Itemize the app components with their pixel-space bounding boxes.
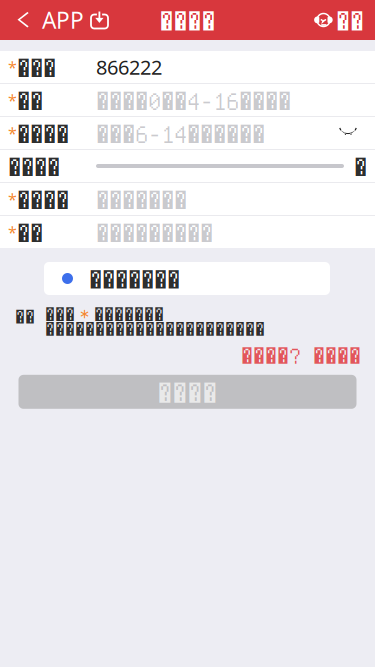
- button[interactable]: *: [0, 183, 375, 215]
- button[interactable]: *: [0, 51, 375, 83]
- staticText: *: [8, 89, 17, 111]
- staticText: *: [8, 122, 17, 144]
- button[interactable]: APP: [0, 0, 118, 40]
- staticText: ����: [157, 377, 217, 406]
- staticText: �������: [96, 186, 187, 212]
- button[interactable]: *: [0, 117, 375, 149]
- staticText: ���: [17, 54, 56, 80]
- button[interactable]: *: [0, 216, 375, 248]
- button[interactable]: Customer service: [315, 0, 375, 40]
- staticText: ���6-14������: [96, 120, 265, 146]
- staticText: *: [8, 221, 17, 243]
- staticText: ���������: [96, 219, 213, 245]
- button[interactable]: �������: [44, 262, 330, 295]
- staticText: ��: [336, 6, 364, 34]
- staticText: 866222: [96, 54, 162, 80]
- staticText: *: [8, 188, 17, 210]
- staticText: ����: [159, 6, 215, 34]
- staticText: ����? ����: [241, 343, 361, 367]
- staticText: ����: [8, 153, 60, 179]
- staticText: ∗: [75, 306, 94, 321]
- staticText: ���: [45, 306, 75, 321]
- staticText: ����0��4-16����: [96, 87, 291, 113]
- staticText: ����: [17, 120, 69, 146]
- button[interactable]: *: [0, 84, 375, 116]
- button[interactable]: ����: [18, 375, 356, 409]
- staticText: *: [8, 56, 17, 78]
- staticText: �: [354, 153, 367, 179]
- staticText: APP: [42, 5, 84, 35]
- staticText: ��: [17, 87, 43, 113]
- staticText: ����: [17, 186, 69, 212]
- staticText: ��: [17, 219, 43, 245]
- staticText: ����������������������: [45, 321, 265, 336]
- staticText: ��: [15, 306, 35, 326]
- staticText: �������: [94, 306, 164, 321]
- staticText: �������: [89, 265, 180, 292]
- button[interactable]: ����? ����: [241, 341, 361, 369]
